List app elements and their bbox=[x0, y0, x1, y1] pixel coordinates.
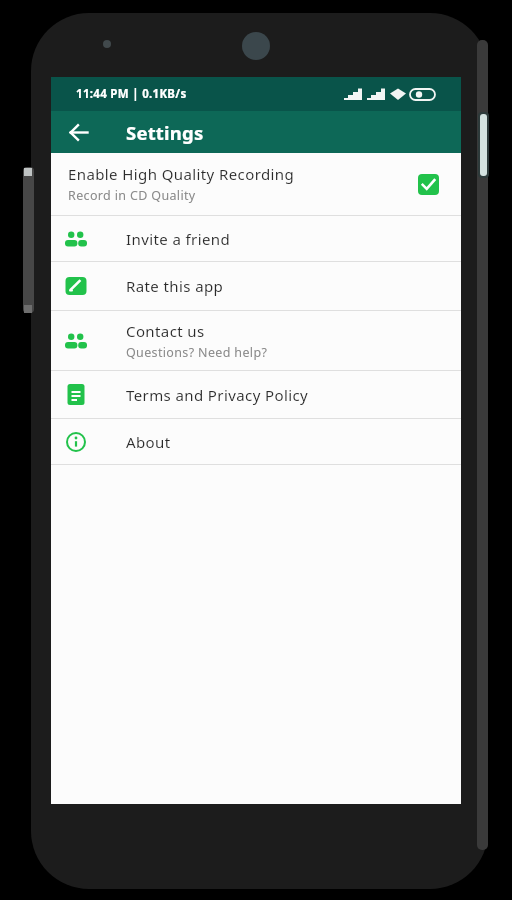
button[interactable]: About bbox=[51, 419, 461, 464]
staticText: Terms and Privacy Policy bbox=[126, 385, 309, 405]
staticText: Rate this app bbox=[126, 276, 224, 296]
staticText: Settings bbox=[126, 120, 204, 145]
button[interactable]: Contact us bbox=[51, 311, 461, 370]
button[interactable]: Terms and Privacy Policy bbox=[51, 371, 461, 418]
staticText: About bbox=[126, 432, 171, 452]
staticText: Record in CD Quality bbox=[68, 187, 196, 204]
staticText: Invite a friend bbox=[126, 229, 231, 249]
staticText: Questions? Need help? bbox=[126, 344, 268, 361]
button[interactable]: Invite a friend bbox=[51, 216, 461, 261]
staticText: Contact us bbox=[126, 321, 205, 341]
button[interactable] bbox=[51, 111, 107, 153]
staticText: 11:44 PM | 0.1KB/s bbox=[76, 86, 187, 102]
button[interactable]: Rate this app bbox=[51, 262, 461, 310]
staticText: Enable High Quality Recording bbox=[68, 164, 295, 184]
button[interactable]: Enable High Quality Recording bbox=[51, 153, 461, 215]
